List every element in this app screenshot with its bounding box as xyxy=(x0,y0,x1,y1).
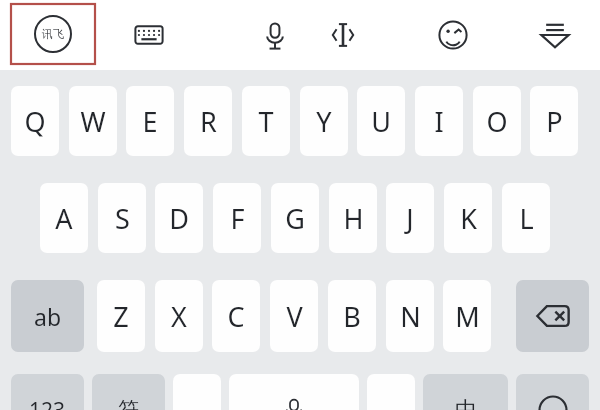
staticText: Z xyxy=(113,298,129,335)
staticText: ab xyxy=(34,301,62,332)
button[interactable]: R xyxy=(184,86,232,156)
button[interactable]: 中 xyxy=(423,374,508,410)
staticText: 符 xyxy=(118,397,139,410)
button[interactable]: D xyxy=(155,183,203,253)
staticText: D xyxy=(169,200,189,237)
button[interactable]: Y xyxy=(300,86,348,156)
staticText: S xyxy=(115,200,130,237)
button[interactable]: Z xyxy=(97,280,145,352)
button[interactable]: A xyxy=(40,183,88,253)
button[interactable]: T xyxy=(242,86,290,156)
button[interactable]: F xyxy=(213,183,261,253)
button[interactable]: U xyxy=(357,86,405,156)
staticText: R xyxy=(200,103,217,140)
staticText: T xyxy=(258,103,274,140)
staticText: G xyxy=(285,200,305,237)
button[interactable]: 123 xyxy=(11,374,84,410)
button[interactable]: Voice input xyxy=(252,12,298,58)
button[interactable]: M xyxy=(443,280,491,352)
button[interactable]: Hide keyboard xyxy=(532,12,578,58)
button[interactable]: V xyxy=(270,280,318,352)
staticText: P xyxy=(546,103,563,140)
button[interactable]: G xyxy=(271,183,319,253)
staticText: L xyxy=(519,200,534,237)
staticText: Q xyxy=(24,103,46,140)
button[interactable]: E xyxy=(126,86,174,156)
staticText: X xyxy=(171,298,187,335)
button[interactable]: Emoji xyxy=(430,12,476,58)
staticText: O xyxy=(486,103,508,140)
button[interactable]: L xyxy=(502,183,550,253)
button[interactable]: iFlytek input method xyxy=(11,4,95,64)
button[interactable]: N xyxy=(386,280,434,352)
staticText: H xyxy=(343,200,364,237)
staticText: F xyxy=(230,200,245,237)
button[interactable]: C xyxy=(212,280,260,352)
button[interactable]: Backspace xyxy=(516,280,589,352)
staticText: W xyxy=(80,103,106,140)
staticText: U xyxy=(371,103,391,140)
staticText: K xyxy=(460,200,477,237)
button[interactable]: Keyboard layout xyxy=(126,12,172,58)
staticText: N xyxy=(400,298,421,335)
staticText: J xyxy=(406,200,414,237)
staticText: V xyxy=(286,298,303,335)
button[interactable]: 符 xyxy=(92,374,165,410)
staticText: 讯飞 xyxy=(42,27,64,41)
staticText: 123 xyxy=(29,396,66,410)
button[interactable]: Q xyxy=(11,86,59,156)
staticText: C xyxy=(227,298,245,335)
staticText: A xyxy=(55,200,73,237)
staticText: E xyxy=(142,103,158,140)
staticText: M xyxy=(455,298,480,335)
button[interactable]: O xyxy=(473,86,521,156)
button[interactable]: K xyxy=(444,183,492,253)
button[interactable]: J xyxy=(386,183,434,253)
button[interactable]: S xyxy=(98,183,146,253)
staticText: B xyxy=(343,298,361,335)
button[interactable]: X xyxy=(155,280,203,352)
button[interactable]: Move cursor xyxy=(320,12,366,58)
button[interactable]: ab xyxy=(11,280,84,352)
button[interactable]: B xyxy=(328,280,376,352)
button[interactable]: Enter xyxy=(516,374,589,410)
staticText: Y xyxy=(316,103,332,140)
button[interactable]: W xyxy=(69,86,117,156)
button[interactable]: Space xyxy=(229,374,359,410)
staticText: 中 xyxy=(455,396,477,410)
button[interactable]: I xyxy=(415,86,463,156)
button[interactable]: P xyxy=(530,86,578,156)
button[interactable]: H xyxy=(329,183,377,253)
staticText: I xyxy=(434,103,444,140)
